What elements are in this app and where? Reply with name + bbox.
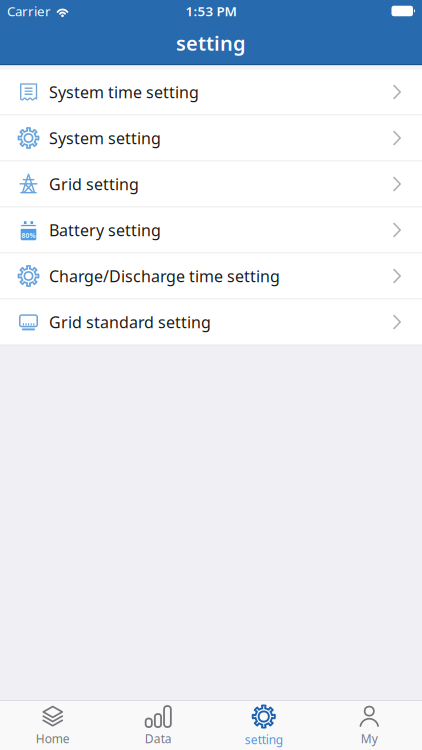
staticText: Battery setting (49, 219, 161, 241)
staticText: Data (145, 730, 172, 746)
button[interactable]: setting (211, 701, 316, 750)
button[interactable]: Charge/Discharge time setting (0, 253, 422, 299)
button[interactable]: Grid setting (0, 161, 422, 207)
button[interactable]: 80% (0, 207, 422, 253)
staticText: 80% (21, 231, 35, 240)
staticText: Home (36, 730, 70, 746)
staticText: setting (176, 30, 246, 56)
staticText: Grid setting (49, 173, 139, 195)
button[interactable]: Home (0, 701, 105, 750)
staticText: System time setting (49, 81, 199, 103)
staticText: setting (245, 731, 283, 747)
staticText: Grid standard setting (49, 311, 211, 333)
staticText: System setting (49, 127, 161, 149)
staticText: Carrier (7, 2, 51, 20)
button[interactable]: Grid standard setting (0, 299, 422, 345)
button[interactable]: System setting (0, 115, 422, 161)
staticText: 1:53 PM (185, 2, 236, 20)
button[interactable]: My (316, 701, 422, 750)
button[interactable]: Data (105, 701, 211, 750)
staticText: Charge/Discharge time setting (49, 265, 280, 287)
staticText: My (361, 730, 378, 746)
button[interactable]: System time setting (0, 69, 422, 115)
